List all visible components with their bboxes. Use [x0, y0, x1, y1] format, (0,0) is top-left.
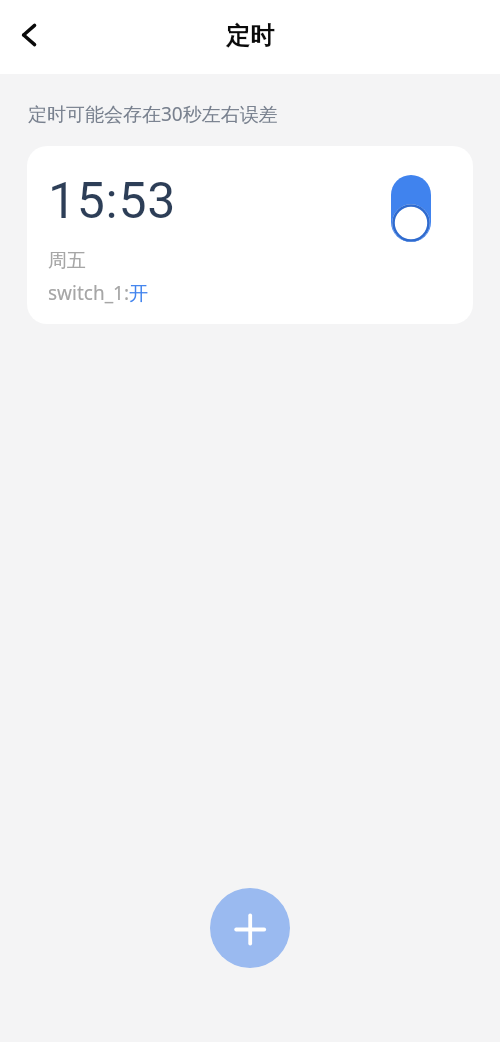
staticText: 15:53: [48, 172, 177, 231]
button[interactable]: Add a new timer: [210, 888, 290, 968]
button[interactable]: Toggle this timer on or off: [391, 175, 431, 242]
button[interactable]: Back: [4, 11, 56, 63]
staticText: 定时可能会存在30秒左右误差: [28, 101, 278, 127]
staticText: switch_1:开: [48, 280, 149, 306]
button[interactable]: 15:53: [27, 146, 473, 324]
staticText: 周五: [48, 249, 86, 273]
staticText: 定时: [226, 21, 274, 51]
